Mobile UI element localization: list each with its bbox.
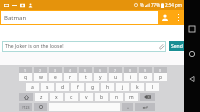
staticText: 5 <box>84 68 87 73</box>
button[interactable]: o <box>139 73 152 81</box>
staticText: p <box>159 74 163 81</box>
button[interactable]: v <box>80 93 93 101</box>
staticText: x <box>55 94 58 101</box>
staticText: k <box>136 84 139 91</box>
button[interactable]: Batman <box>1 11 158 24</box>
staticText: 8 <box>129 68 132 73</box>
staticText: y <box>99 74 102 81</box>
staticText: i <box>130 74 132 81</box>
staticText: 4 <box>69 68 72 73</box>
button[interactable] <box>135 103 155 111</box>
button[interactable]: q <box>19 73 32 81</box>
button[interactable]: f <box>71 83 84 91</box>
button[interactable]: k <box>131 83 144 91</box>
button[interactable] <box>34 103 47 111</box>
staticText: Send <box>171 43 183 50</box>
button[interactable]: Recent apps <box>184 21 200 37</box>
button[interactable]: Contact info <box>158 10 172 25</box>
staticText: 1 <box>24 68 27 73</box>
staticText: 3 <box>54 68 57 73</box>
staticText: d <box>61 84 65 91</box>
staticText: 7 <box>114 68 117 73</box>
staticText: h <box>106 84 110 91</box>
staticText: The Joker is on the loose! <box>5 43 156 50</box>
staticText: u <box>114 74 118 81</box>
staticText: q <box>24 74 28 81</box>
button[interactable]: c <box>65 93 78 101</box>
button[interactable]: m <box>125 93 138 101</box>
button[interactable]: x <box>50 93 63 101</box>
button[interactable]: j <box>116 83 129 91</box>
button[interactable]: z <box>35 93 48 101</box>
button[interactable]: e <box>49 73 62 81</box>
button[interactable]: Home <box>184 46 200 62</box>
button[interactable]: Attach file <box>156 41 166 52</box>
staticText: s <box>46 84 49 91</box>
button[interactable]: p <box>154 73 167 81</box>
staticText: b <box>100 94 104 101</box>
button[interactable]: More options <box>172 10 184 25</box>
staticText: v <box>85 94 88 101</box>
button[interactable]: i <box>124 73 137 81</box>
staticText: f <box>77 84 79 91</box>
staticText: j <box>122 84 124 91</box>
button[interactable]: Back <box>184 71 200 87</box>
staticText: g <box>91 84 95 91</box>
staticText: l <box>152 84 154 91</box>
button[interactable]: h <box>101 83 114 91</box>
button[interactable]: b <box>95 93 108 101</box>
button[interactable] <box>122 103 133 111</box>
button[interactable]: l <box>146 83 159 91</box>
staticText: n <box>115 94 119 101</box>
staticText: c <box>70 94 73 101</box>
staticText: e <box>54 74 57 81</box>
staticText: w <box>39 74 43 81</box>
staticText: 2 <box>39 68 42 73</box>
button[interactable]: n <box>110 93 123 101</box>
staticText: 2:54 pm <box>165 2 183 8</box>
button[interactable]: y <box>94 73 107 81</box>
staticText: 0 <box>159 68 162 73</box>
button[interactable]: ?123 <box>19 103 32 111</box>
button[interactable]: g <box>86 83 99 91</box>
button[interactable]: d <box>56 83 69 91</box>
staticText: ?123 <box>22 105 30 110</box>
staticText: z <box>40 94 43 101</box>
staticText: 9 <box>144 68 147 73</box>
button[interactable]: r <box>64 73 77 81</box>
staticText: r <box>69 74 72 81</box>
staticText: o <box>144 74 148 81</box>
staticText: Batman <box>4 14 27 22</box>
button[interactable] <box>19 93 33 101</box>
staticText: 6 <box>99 68 102 73</box>
button[interactable]: The Joker is on the loose! <box>2 41 166 52</box>
button[interactable]: u <box>109 73 122 81</box>
button[interactable]: t <box>79 73 92 81</box>
button[interactable]: a <box>26 83 39 91</box>
staticText: a <box>31 84 34 91</box>
staticText: m <box>129 94 134 101</box>
staticText: 77% <box>151 2 160 8</box>
staticText: % <box>140 2 144 8</box>
staticText: t <box>85 74 87 81</box>
button[interactable]: s <box>41 83 54 91</box>
button[interactable] <box>140 93 155 101</box>
button[interactable]: Send <box>169 41 184 51</box>
button[interactable]: w <box>34 73 47 81</box>
